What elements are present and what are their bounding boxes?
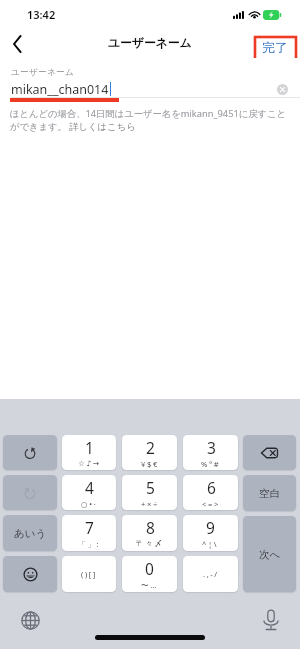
staticText: 1: [85, 437, 94, 458]
staticText: 7: [85, 517, 94, 538]
button[interactable]: 1: [62, 435, 116, 470]
button[interactable]: あいう: [3, 515, 57, 551]
staticText: ()[]: [81, 569, 97, 579]
button[interactable]: Back: [0, 27, 34, 58]
button[interactable]: Change keyboard: [21, 611, 40, 630]
staticText: 3: [207, 437, 216, 458]
staticText: 5: [146, 477, 155, 498]
staticText: 0: [145, 558, 154, 579]
staticText: ユーザーネーム: [108, 36, 192, 51]
button[interactable]: 4: [62, 475, 116, 510]
staticText: 6: [207, 477, 216, 498]
button[interactable]: 7: [62, 515, 116, 551]
staticText: 次へ: [259, 548, 281, 561]
staticText: 4: [85, 477, 94, 498]
staticText: 〒々〆: [136, 539, 164, 549]
staticText: mikan__chan014: [11, 81, 109, 97]
staticText: 完了: [262, 40, 288, 56]
staticText: %°#: [201, 459, 221, 469]
staticText: ○•·: [81, 499, 98, 509]
staticText: ^¦\: [202, 539, 219, 549]
button[interactable]: 空白: [243, 475, 296, 511]
staticText: .,-/: [203, 569, 219, 579]
button[interactable]: 5: [122, 475, 177, 510]
button[interactable]: Dictate: [263, 609, 279, 631]
button[interactable]: Clear text: [277, 84, 288, 95]
button[interactable]: 次へ: [243, 516, 296, 592]
staticText: 「」:: [78, 539, 101, 549]
button[interactable]: 2: [122, 435, 177, 470]
button[interactable]: 3: [183, 435, 238, 470]
staticText: ほとんどの場合、14日間はユーザー名をmikann_9451に戻すことができます…: [10, 107, 293, 133]
staticText: 8: [146, 517, 155, 538]
button[interactable]: 9: [183, 515, 238, 551]
staticText: あいう: [14, 527, 47, 540]
button[interactable]: 完了: [259, 38, 291, 58]
button[interactable]: [3, 475, 57, 510]
button[interactable]: ()[]: [62, 556, 116, 592]
button[interactable]: 0: [122, 556, 177, 592]
button[interactable]: [3, 556, 57, 592]
staticText: 空白: [259, 487, 280, 500]
staticText: +×÷: [141, 499, 159, 509]
staticText: ☆♪→: [78, 459, 101, 468]
button[interactable]: 8: [122, 515, 177, 551]
staticText: 9: [206, 517, 215, 538]
staticText: ユーザーネーム: [11, 67, 75, 78]
staticText: <=>: [202, 499, 220, 509]
button[interactable]: .,-/: [183, 556, 238, 592]
staticText: ¥$€: [141, 459, 159, 469]
staticText: 13:42: [27, 7, 56, 22]
button[interactable]: [243, 435, 296, 470]
staticText: 〜…: [141, 580, 158, 590]
staticText: 2: [146, 437, 155, 458]
button[interactable]: 6: [183, 475, 238, 510]
button[interactable]: [3, 435, 57, 470]
